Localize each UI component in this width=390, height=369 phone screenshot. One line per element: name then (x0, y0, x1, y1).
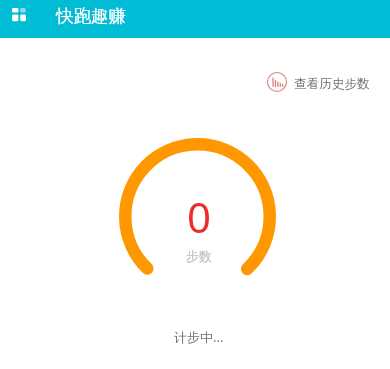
staticText: 快跑趣赚 (56, 5, 126, 27)
staticText: 查看历史步数 (294, 76, 370, 92)
button[interactable]: 查看历史步数 (266, 71, 370, 92)
staticText: 0 (187, 188, 212, 245)
staticText: 步数 (186, 248, 212, 264)
button[interactable]: Menu (5, 0, 33, 28)
staticText: 计步中... (174, 328, 224, 346)
